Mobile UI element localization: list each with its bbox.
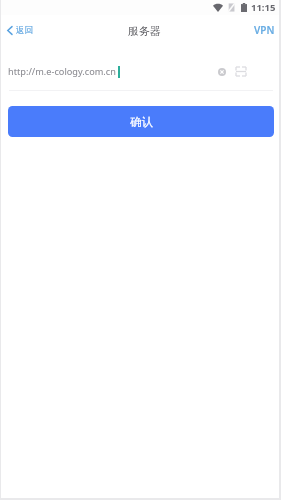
button[interactable]: 确认 — [8, 106, 274, 137]
button[interactable]: Scan QR code — [233, 64, 249, 79]
staticText: 11:15 — [251, 1, 276, 14]
staticText: http://m.e-cology.com.cn — [8, 65, 116, 78]
staticText: 确认 — [130, 115, 153, 129]
staticText: 服务器 — [128, 24, 161, 38]
staticText: 返回 — [16, 25, 33, 36]
button[interactable]: 返回 — [1, 15, 43, 45]
button[interactable]: Clear text — [215, 65, 229, 79]
staticText: VPN — [254, 23, 275, 37]
button[interactable]: VPN — [248, 15, 279, 45]
